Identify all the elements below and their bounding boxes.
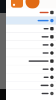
button[interactable] xyxy=(6,17,56,24)
button[interactable] xyxy=(6,9,56,16)
button[interactable] xyxy=(6,41,56,49)
button[interactable] xyxy=(6,65,56,73)
button[interactable] xyxy=(6,25,56,32)
button[interactable] xyxy=(6,82,56,89)
button[interactable] xyxy=(6,73,56,81)
button[interactable] xyxy=(6,57,56,65)
button[interactable] xyxy=(6,33,56,41)
button[interactable] xyxy=(6,90,56,97)
button[interactable] xyxy=(6,49,56,57)
